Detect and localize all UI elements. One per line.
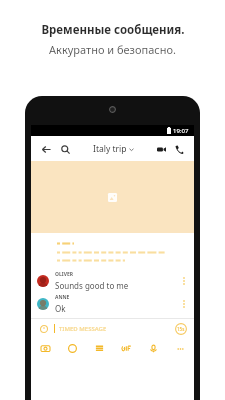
button[interactable]: Video call: [153, 141, 169, 157]
button[interactable]: ANNE: [31, 292, 194, 315]
button[interactable]: More options: [179, 299, 189, 309]
staticText: Аккуратно и безопасно.: [49, 42, 176, 57]
staticText: Sounds good to me: [55, 280, 129, 291]
button[interactable]: Stickers: [64, 340, 80, 356]
button[interactable]: 15 seconds: [175, 323, 187, 335]
button[interactable]: OLIVER: [31, 269, 194, 292]
staticText: Временные сообщения.: [41, 22, 185, 38]
button[interactable]: Voice message: [145, 340, 161, 356]
button[interactable]: Photo: [31, 161, 194, 233]
staticText: Italy trip: [93, 143, 127, 155]
button[interactable]: Timer: [31, 319, 194, 338]
button[interactable]: More options: [179, 276, 189, 286]
button[interactable]: Gallery: [91, 340, 107, 356]
staticText: OLIVER: [55, 271, 74, 278]
staticText: 15s: [177, 326, 185, 332]
staticText: TIMED MESSAGE: [59, 325, 107, 333]
button[interactable]: Call: [171, 141, 187, 157]
button[interactable]: Camera: [37, 340, 53, 356]
staticText: Ok: [55, 303, 66, 314]
button[interactable]: Timer: [38, 323, 49, 334]
button[interactable]: Italy trip: [73, 143, 153, 155]
staticText: 19:07: [173, 127, 189, 135]
button[interactable]: GIF: [118, 340, 134, 356]
button[interactable]: More: [172, 340, 188, 356]
staticText: ANNE: [55, 294, 70, 301]
button[interactable]: Back: [38, 141, 54, 157]
button[interactable]: Search: [57, 141, 73, 157]
